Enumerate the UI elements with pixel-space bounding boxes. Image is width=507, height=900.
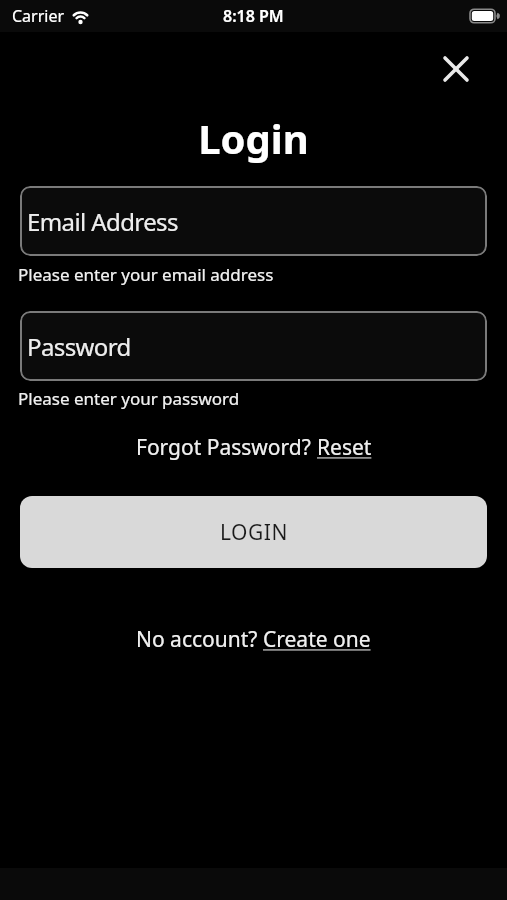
staticText: Please enter your email address xyxy=(18,263,274,286)
staticText: Carrier xyxy=(12,5,65,27)
staticText: No account? xyxy=(136,625,263,654)
button[interactable]: Email Address xyxy=(20,186,487,256)
staticText: Email Address xyxy=(27,205,178,238)
button[interactable]: Password xyxy=(20,311,487,381)
staticText: 8:18 PM xyxy=(223,5,284,27)
staticText: Forgot Password? xyxy=(136,433,317,462)
button[interactable] xyxy=(438,51,474,87)
staticText: LOGIN xyxy=(220,518,288,547)
staticText: Password xyxy=(27,330,131,363)
staticText: Login xyxy=(0,111,507,165)
button[interactable]: LOGIN xyxy=(20,496,487,568)
button[interactable]: Create one xyxy=(263,625,371,654)
staticText: Please enter your password xyxy=(18,387,240,410)
button[interactable]: Reset xyxy=(317,433,372,462)
